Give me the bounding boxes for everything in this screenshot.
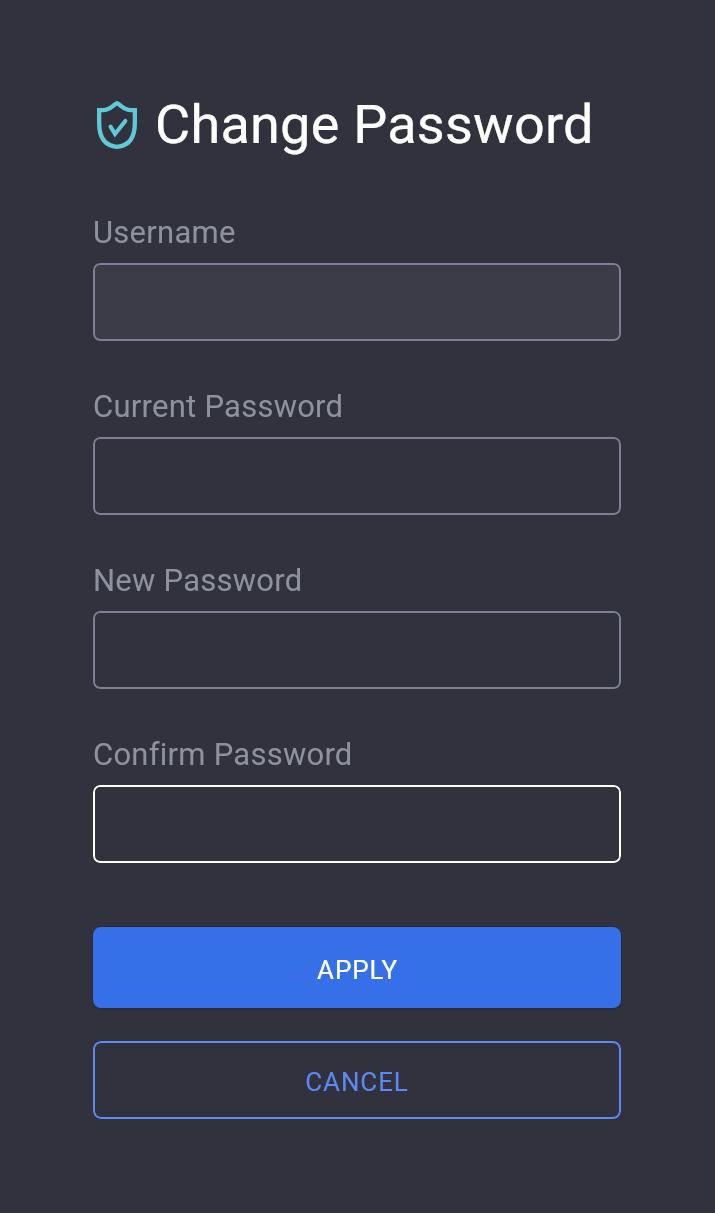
staticText: APPLY <box>317 955 398 985</box>
button[interactable]: APPLY <box>93 927 621 1008</box>
staticText: Confirm Password <box>93 736 353 772</box>
staticText: Current Password <box>93 388 344 424</box>
button[interactable]: Confirm Password input <box>93 785 621 863</box>
button[interactable]: CANCEL <box>93 1041 621 1119</box>
staticText: Change Password <box>155 93 594 156</box>
staticText: Username <box>93 214 236 250</box>
button[interactable]: Current Password input <box>93 437 621 515</box>
staticText: CANCEL <box>305 1067 409 1097</box>
button[interactable]: Username input <box>93 263 621 341</box>
staticText: New Password <box>93 562 303 598</box>
button[interactable]: New Password input <box>93 611 621 689</box>
